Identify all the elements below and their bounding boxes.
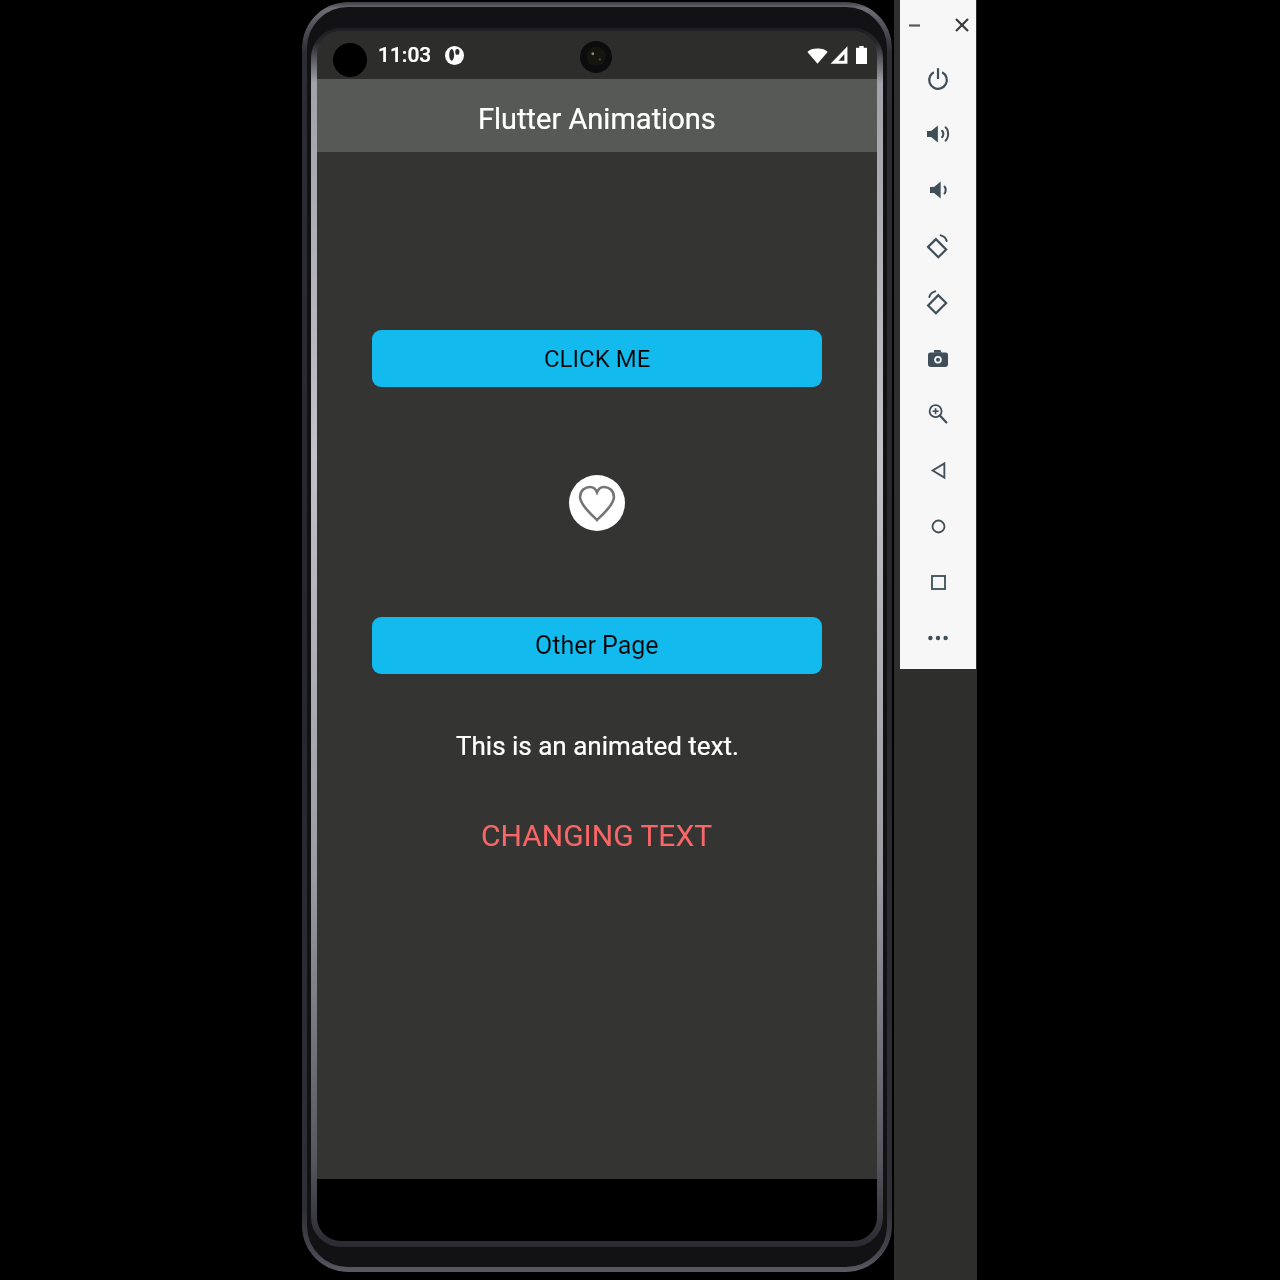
button[interactable]: Minimize: [902, 13, 926, 37]
button[interactable]: Back: [910, 442, 966, 498]
button[interactable]: Power: [910, 50, 966, 106]
button[interactable]: Volume down: [910, 162, 966, 218]
button[interactable]: Close: [950, 13, 974, 37]
button[interactable]: Favorite: [569, 475, 625, 531]
button[interactable]: Other Page: [372, 617, 822, 674]
staticText: Other Page: [535, 631, 659, 660]
button[interactable]: Volume up: [910, 106, 966, 162]
button[interactable]: Rotate left: [910, 218, 966, 274]
staticText: CLICK ME: [544, 345, 651, 373]
button[interactable]: More: [910, 610, 966, 666]
staticText: Flutter Animations: [478, 102, 716, 136]
button[interactable]: Zoom: [910, 386, 966, 442]
button[interactable]: Home: [910, 498, 966, 554]
staticText: This is an animated text.: [456, 731, 739, 761]
button[interactable]: Overview: [910, 554, 966, 610]
button[interactable]: Rotate right: [910, 274, 966, 330]
staticText: 11:03: [378, 43, 432, 68]
button[interactable]: Take screenshot: [910, 330, 966, 386]
button[interactable]: CLICK ME: [372, 330, 822, 387]
staticText: CHANGING TEXT: [481, 818, 713, 853]
